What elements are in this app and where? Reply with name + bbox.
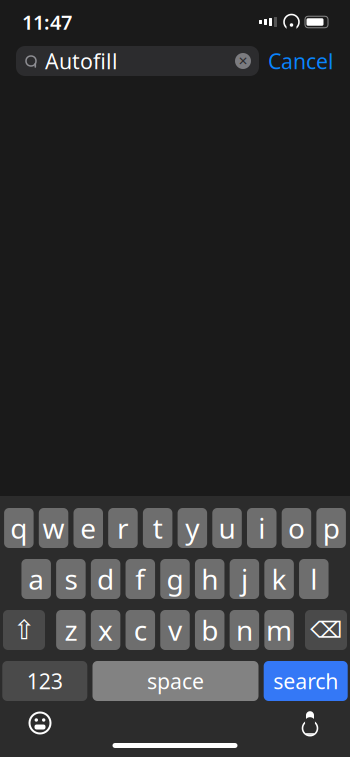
staticText: Cancel: [268, 47, 334, 75]
button[interactable]: e: [73, 508, 103, 548]
button[interactable]: u: [212, 508, 242, 548]
staticText: h: [201, 560, 218, 598]
button[interactable]: Cancel: [268, 47, 334, 75]
staticText: d: [97, 560, 114, 598]
staticText: y: [185, 509, 199, 547]
button[interactable]: n: [230, 610, 259, 650]
staticText: n: [236, 611, 253, 649]
button[interactable]: h: [195, 559, 224, 599]
button[interactable]: z: [56, 610, 86, 650]
button[interactable]: t: [143, 508, 172, 548]
button[interactable]: Shift: [3, 610, 45, 650]
button[interactable]: i: [247, 508, 276, 548]
staticText: f: [135, 560, 145, 598]
staticText: b: [201, 611, 218, 649]
button[interactable]: Clear text: [235, 53, 251, 69]
button[interactable]: q: [4, 508, 34, 548]
staticText: v: [168, 611, 182, 649]
button[interactable]: v: [160, 610, 190, 650]
button[interactable]: m: [264, 610, 294, 650]
button[interactable]: r: [108, 508, 138, 548]
staticText: Autofill: [45, 47, 118, 75]
staticText: q: [10, 509, 27, 547]
button[interactable]: Autofill: [16, 46, 259, 76]
staticText: space: [147, 667, 204, 695]
staticText: j: [241, 560, 248, 598]
button[interactable]: k: [264, 559, 294, 599]
button[interactable]: y: [178, 508, 207, 548]
staticText: ⌫: [310, 617, 342, 643]
button[interactable]: d: [91, 559, 120, 599]
button[interactable]: a: [21, 559, 51, 599]
staticText: 123: [27, 667, 63, 695]
staticText: u: [218, 509, 235, 547]
staticText: 11:47: [22, 9, 72, 35]
button[interactable]: f: [125, 559, 155, 599]
button[interactable]: g: [160, 559, 190, 599]
button[interactable]: Delete: [305, 610, 347, 650]
button[interactable]: space: [92, 661, 258, 701]
button[interactable]: b: [195, 610, 224, 650]
staticText: i: [258, 509, 265, 547]
button[interactable]: x: [91, 610, 120, 650]
button[interactable]: c: [126, 610, 155, 650]
button[interactable]: l: [299, 559, 328, 599]
staticText: c: [134, 611, 147, 649]
staticText: k: [272, 560, 287, 598]
staticText: z: [64, 611, 77, 649]
staticText: l: [310, 560, 317, 598]
staticText: o: [288, 509, 305, 547]
staticText: e: [80, 509, 96, 547]
staticText: g: [166, 560, 183, 598]
staticText: s: [64, 560, 77, 598]
button[interactable]: w: [39, 508, 68, 548]
button[interactable]: Dictation: [294, 707, 326, 739]
staticText: x: [98, 611, 113, 649]
staticText: p: [323, 509, 340, 547]
staticText: m: [266, 611, 292, 649]
button[interactable]: search: [264, 661, 348, 701]
button[interactable]: p: [316, 508, 346, 548]
staticText: search: [273, 667, 338, 695]
staticText: w: [42, 509, 64, 547]
button[interactable]: o: [282, 508, 311, 548]
button[interactable]: s: [56, 559, 86, 599]
button[interactable]: Emoji: [24, 707, 56, 739]
staticText: ⇧: [13, 615, 35, 645]
button[interactable]: 123: [2, 661, 87, 701]
button[interactable]: j: [230, 559, 259, 599]
staticText: t: [153, 509, 163, 547]
staticText: ✕: [238, 54, 248, 68]
staticText: r: [117, 509, 129, 547]
staticText: a: [28, 560, 44, 598]
